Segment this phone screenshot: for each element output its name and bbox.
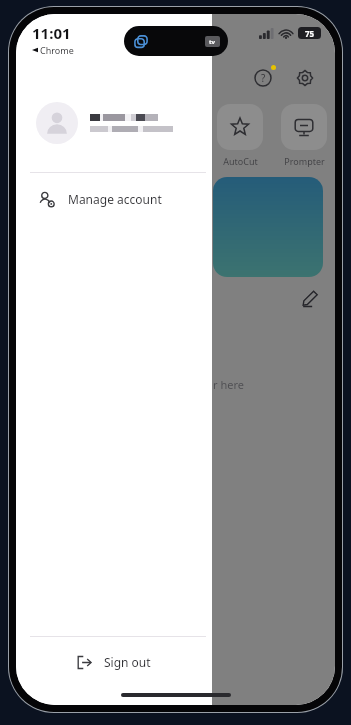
staticText: ? bbox=[261, 71, 266, 85]
staticText: 75 bbox=[305, 28, 315, 39]
button[interactable]: Help bbox=[251, 66, 275, 90]
staticText: r here bbox=[213, 377, 244, 392]
button[interactable] bbox=[16, 98, 212, 148]
staticText: tv bbox=[209, 38, 216, 46]
staticText: Manage account bbox=[68, 191, 162, 207]
button[interactable]: Edit bbox=[301, 289, 319, 307]
button[interactable]: Sign out bbox=[16, 637, 212, 687]
staticText: 11:01 bbox=[32, 23, 71, 43]
button[interactable]: AutoCut bbox=[213, 104, 267, 167]
staticText: Sign out bbox=[104, 654, 151, 670]
button[interactable] bbox=[213, 177, 323, 277]
staticText: Prompter bbox=[284, 155, 325, 167]
staticText: Chrome bbox=[40, 44, 74, 56]
button[interactable]: Prompter bbox=[277, 104, 331, 167]
button[interactable]: Manage account bbox=[16, 173, 212, 225]
staticText: AutoCut bbox=[223, 155, 258, 167]
button[interactable]: Settings bbox=[293, 66, 317, 90]
